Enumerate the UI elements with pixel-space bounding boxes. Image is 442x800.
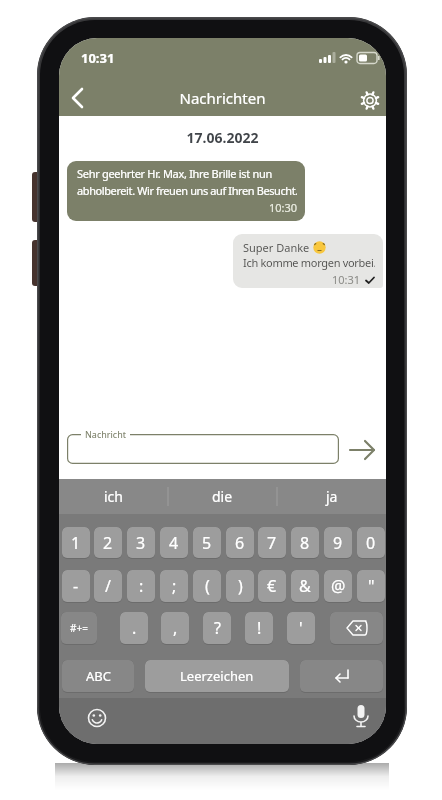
- button[interactable]: [330, 612, 383, 645]
- staticText: ja: [326, 487, 338, 506]
- button[interactable]: 0: [357, 527, 385, 559]
- button[interactable]: [300, 660, 383, 693]
- button[interactable]: !: [245, 612, 273, 645]
- button[interactable]: ABC: [62, 660, 134, 693]
- staticText: 17.06.2022: [59, 128, 386, 147]
- staticText: ich: [104, 487, 123, 506]
- staticText: Nachricht: [85, 428, 126, 440]
- staticText: 10:31: [332, 272, 361, 287]
- button[interactable]: ja: [277, 479, 386, 514]
- button[interactable]: Super Danke: [243, 239, 375, 288]
- button[interactable]: 5: [193, 527, 221, 559]
- staticText: 6: [235, 532, 245, 554]
- button[interactable]: ;: [160, 570, 188, 603]
- button[interactable]: [357, 88, 383, 114]
- staticText: 9: [333, 532, 343, 554]
- staticText: .: [132, 617, 137, 639]
- staticText: !: [257, 617, 262, 639]
- staticText: @: [331, 575, 346, 597]
- staticText: 7: [267, 532, 277, 554]
- staticText: -: [73, 575, 79, 597]
- staticText: ": [368, 575, 375, 597]
- button[interactable]: &: [291, 570, 319, 603]
- button[interactable]: ": [357, 570, 385, 603]
- staticText: Super Danke: [243, 240, 313, 255]
- staticText: ): [238, 575, 243, 597]
- staticText: ?: [214, 617, 221, 639]
- staticText: abholbereit. Wir freuen uns auf Ihren Be…: [77, 183, 297, 200]
- button[interactable]: €: [258, 570, 286, 603]
- button[interactable]: /: [94, 570, 122, 603]
- staticText: 2: [103, 532, 113, 554]
- button[interactable]: [63, 82, 97, 114]
- button[interactable]: ich: [59, 479, 168, 514]
- button[interactable]: Nachricht: [67, 434, 339, 464]
- staticText: 10:31: [81, 49, 115, 67]
- button[interactable]: 4: [160, 527, 188, 559]
- staticText: ABC: [86, 667, 111, 685]
- button[interactable]: Leerzeichen: [145, 660, 289, 693]
- button[interactable]: 2: [94, 527, 122, 559]
- staticText: 4: [169, 532, 179, 554]
- button[interactable]: ): [226, 570, 254, 603]
- button[interactable]: die: [168, 479, 277, 514]
- button[interactable]: 1: [62, 527, 90, 559]
- staticText: ': [299, 617, 303, 639]
- staticText: die: [212, 487, 233, 506]
- button[interactable]: :: [127, 570, 155, 603]
- staticText: &: [299, 575, 311, 597]
- button[interactable]: [347, 702, 375, 734]
- staticText: Nachrichten: [59, 88, 386, 108]
- staticText: ,: [173, 617, 178, 639]
- staticText: 10:30: [77, 200, 297, 215]
- staticText: Leerzeichen: [180, 667, 254, 685]
- staticText: 1: [71, 532, 81, 554]
- staticText: 3: [136, 532, 146, 554]
- button[interactable]: .: [120, 612, 148, 645]
- button[interactable]: ?: [203, 612, 231, 645]
- button[interactable]: ': [287, 612, 315, 645]
- staticText: :: [139, 575, 144, 597]
- button[interactable]: [83, 704, 111, 732]
- button[interactable]: ,: [161, 612, 189, 645]
- staticText: #+=: [70, 621, 88, 635]
- button[interactable]: -: [62, 570, 90, 603]
- button[interactable]: 9: [324, 527, 352, 559]
- button[interactable]: Sehr geehrter Hr. Max, Ihre Brille ist n…: [77, 166, 297, 221]
- staticText: 8: [300, 532, 310, 554]
- button[interactable]: 8: [291, 527, 319, 559]
- button[interactable]: (: [193, 570, 221, 603]
- staticText: €: [267, 575, 277, 597]
- button[interactable]: 6: [226, 527, 254, 559]
- button[interactable]: 7: [258, 527, 286, 559]
- staticText: Sehr geehrter Hr. Max, Ihre Brille ist n…: [77, 166, 272, 183]
- staticText: (: [205, 575, 210, 597]
- button[interactable]: @: [324, 570, 352, 603]
- staticText: 5: [202, 532, 212, 554]
- button[interactable]: 3: [127, 527, 155, 559]
- staticText: /: [105, 575, 111, 597]
- staticText: 0: [366, 532, 376, 554]
- staticText: ;: [172, 575, 177, 597]
- button[interactable]: #+=: [61, 612, 97, 645]
- button[interactable]: [347, 436, 379, 464]
- staticText: Ich komme morgen vorbei.: [243, 255, 375, 272]
